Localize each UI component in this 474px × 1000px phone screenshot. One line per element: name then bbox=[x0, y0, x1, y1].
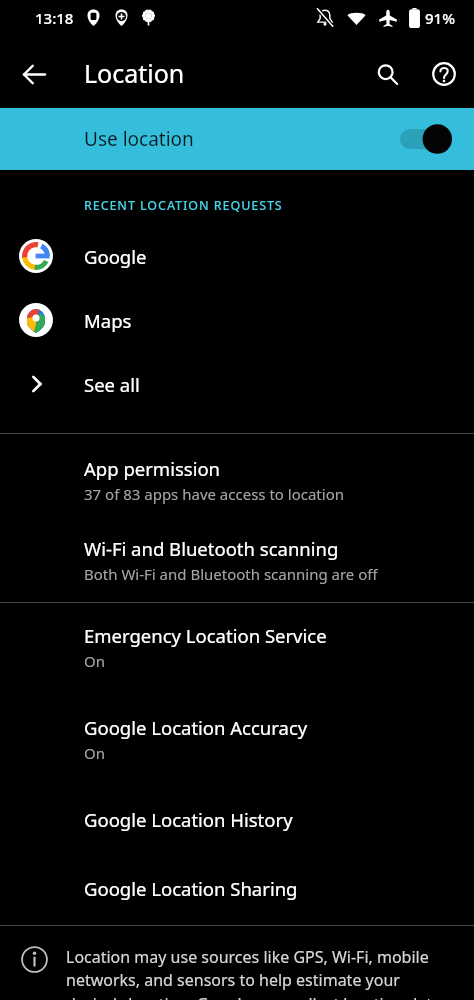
button[interactable]: Back bbox=[11, 51, 57, 97]
staticText: Emergency Location Service bbox=[84, 623, 327, 648]
button[interactable]: Google Location Accuracy bbox=[0, 689, 474, 781]
staticText: Wi-Fi and Bluetooth scanning bbox=[84, 536, 339, 561]
staticText: On bbox=[84, 651, 105, 671]
staticText: Maps bbox=[84, 308, 132, 333]
button[interactable]: See all bbox=[0, 352, 474, 416]
staticText: RECENT LOCATION REQUESTS bbox=[84, 197, 283, 214]
staticText: See all bbox=[84, 372, 140, 397]
staticText: App permission bbox=[84, 456, 221, 481]
button[interactable]: Maps bbox=[0, 288, 474, 352]
staticText: Google Location Accuracy bbox=[84, 715, 308, 740]
button[interactable]: Wi-Fi and Bluetooth scanning bbox=[0, 522, 474, 602]
button[interactable]: Help bbox=[421, 51, 467, 97]
staticText: 91% bbox=[425, 8, 455, 28]
button[interactable]: App permission bbox=[0, 434, 474, 522]
staticText: Google bbox=[84, 244, 147, 269]
button[interactable]: Search bbox=[364, 51, 410, 97]
staticText: Use location bbox=[84, 126, 194, 152]
button[interactable]: Google bbox=[0, 224, 474, 288]
button[interactable]: Use location bbox=[0, 108, 474, 170]
staticText: Location may use sources like GPS, Wi-Fi… bbox=[66, 946, 460, 1000]
staticText: Both Wi-Fi and Bluetooth scanning are of… bbox=[84, 564, 378, 584]
button[interactable]: Google Location History bbox=[0, 781, 474, 850]
staticText: 37 of 83 apps have access to location bbox=[84, 484, 344, 504]
staticText: Location bbox=[84, 56, 185, 90]
staticText: Google Location Sharing bbox=[84, 876, 298, 901]
button[interactable]: Emergency Location Service bbox=[0, 603, 474, 689]
staticText: Google Location History bbox=[84, 807, 293, 832]
staticText: 13:18 bbox=[35, 8, 74, 28]
staticText: On bbox=[84, 743, 105, 763]
button[interactable]: Google Location Sharing bbox=[0, 850, 474, 925]
